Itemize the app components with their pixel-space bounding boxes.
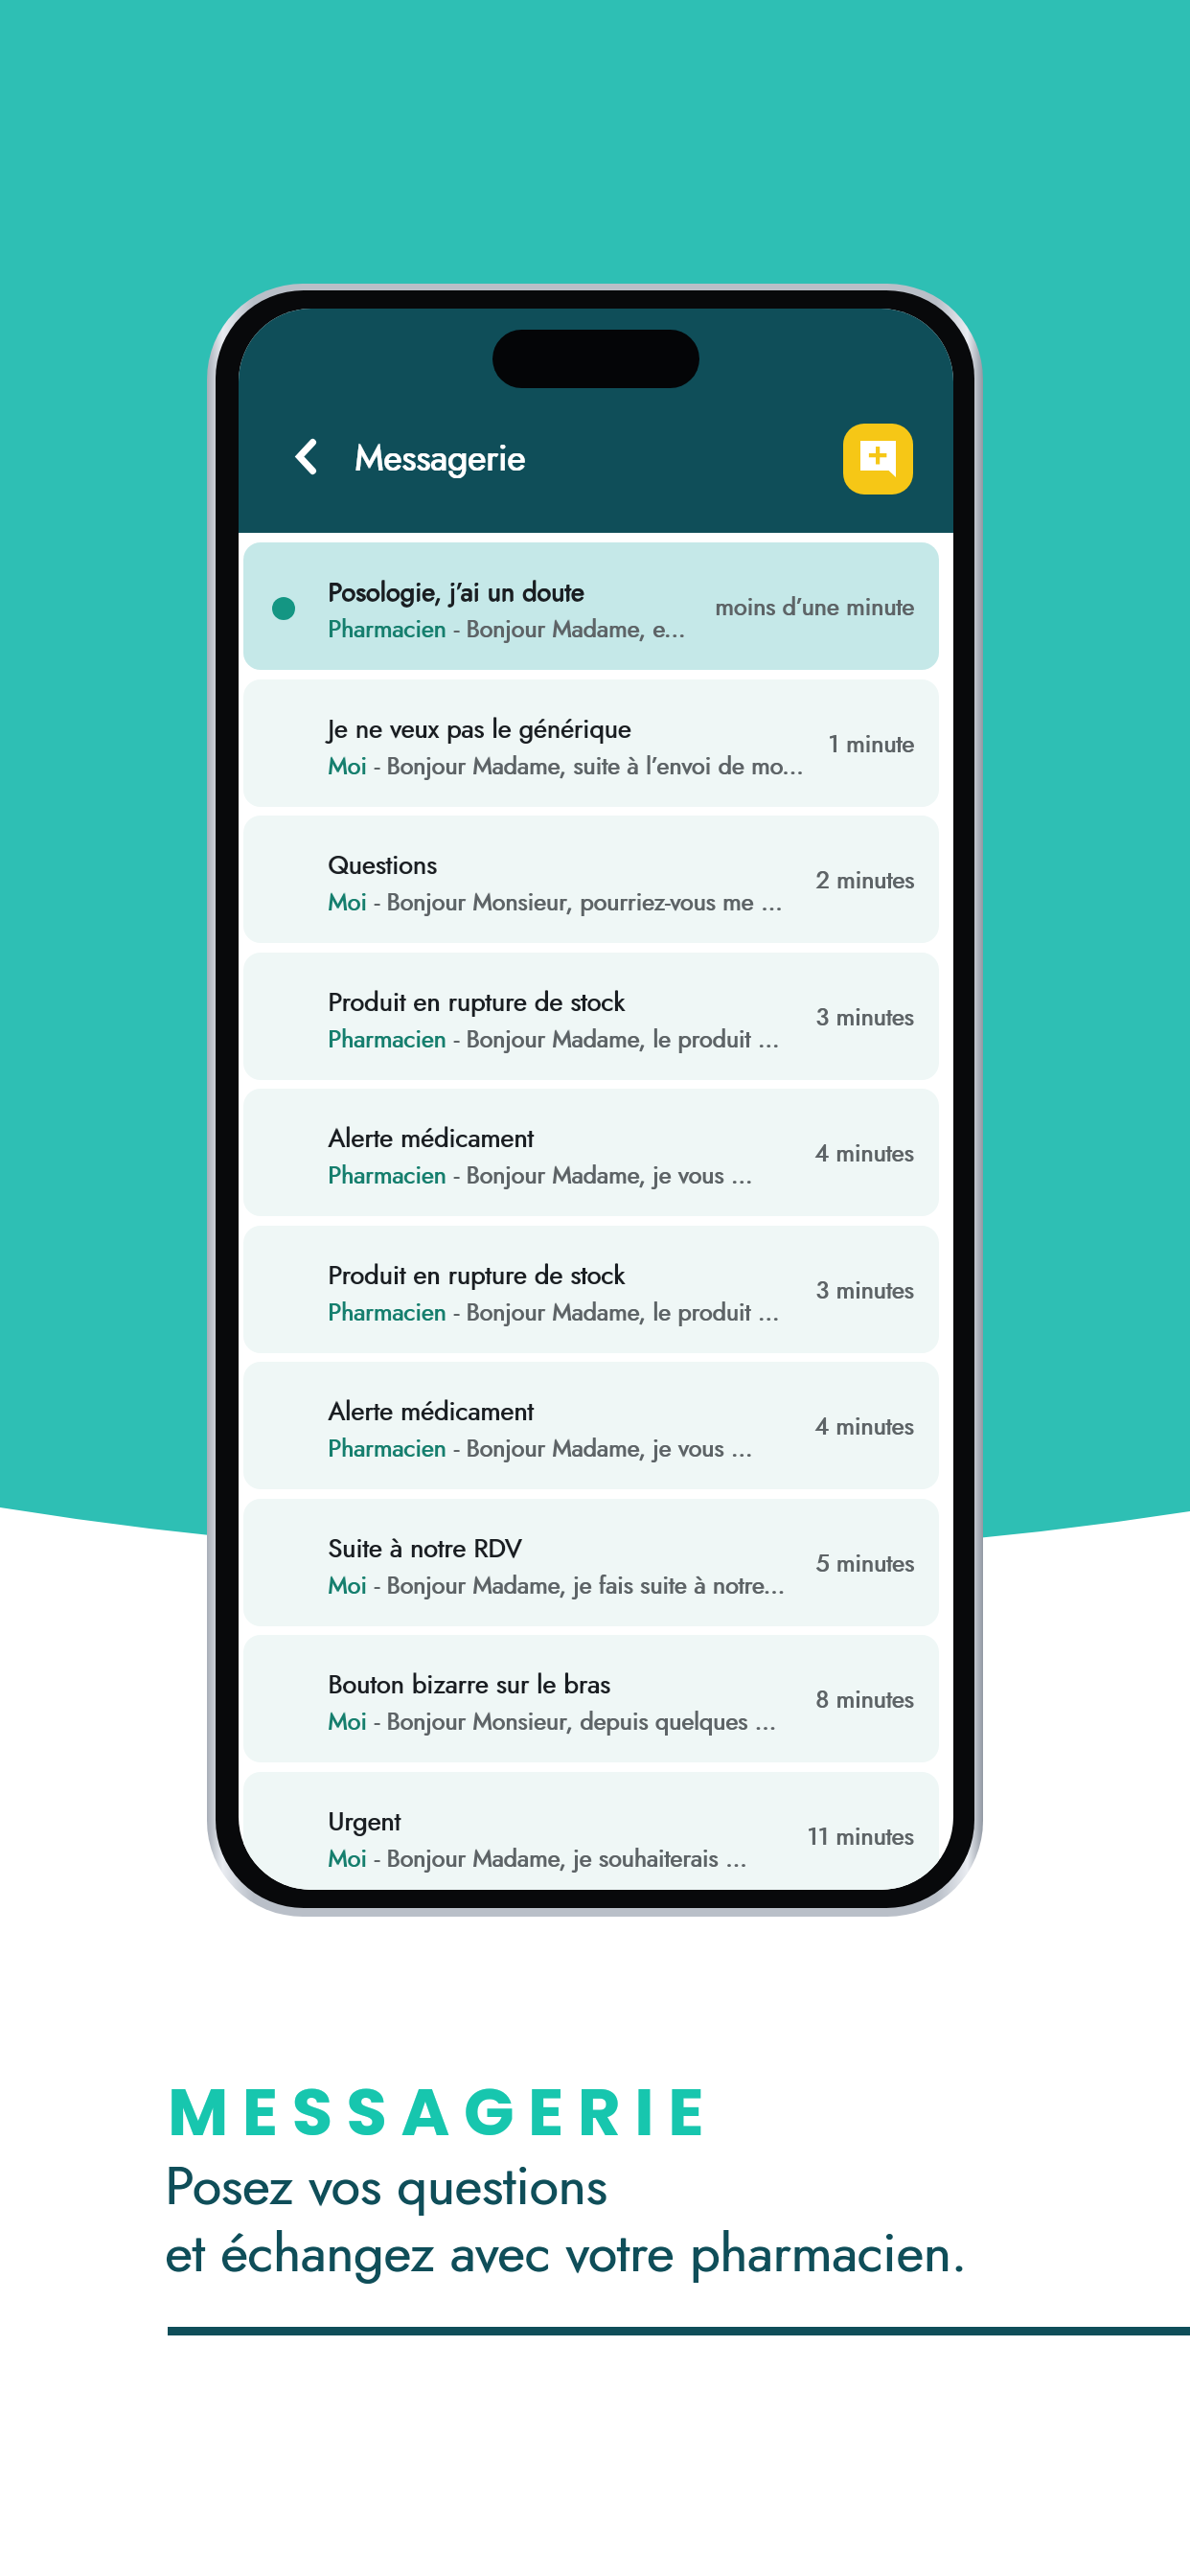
staticText: - Bonjour Madame, je vous ... <box>446 1431 753 1465</box>
staticText: - Bonjour Madame, je vous ... <box>446 1158 753 1192</box>
staticText: Moi <box>329 1841 368 1875</box>
staticText: - Bonjour Madame, je fais suite à notre.… <box>368 1568 786 1602</box>
staticText: 4 minutes <box>815 1136 915 1170</box>
staticText: Posologie, j’ai un doute <box>329 573 585 610</box>
staticText: Produit en rupture de stock <box>328 983 625 1021</box>
staticText: Pharmacien <box>328 1431 446 1465</box>
button[interactable]: Nouveau message <box>843 424 913 494</box>
staticText: Pharmacien <box>328 1158 446 1192</box>
staticText: Messagerie <box>355 432 526 483</box>
staticText: Posologie, j’ai un doute <box>329 573 585 610</box>
staticText: - Bonjour Monsieur, depuis quelques ... <box>368 1704 777 1738</box>
staticText: - Bonjour Madame, le produit ... <box>446 1295 780 1329</box>
staticText: - Bonjour Monsieur, depuis quelques ... <box>367 1704 776 1738</box>
button[interactable]: Retour <box>271 422 340 491</box>
staticText: 3 minutes <box>816 1000 915 1034</box>
staticText: 4 minutes <box>815 1409 915 1443</box>
staticText: Moi <box>328 748 367 783</box>
staticText: Urgent <box>328 1803 400 1840</box>
button[interactable]: Je ne veux pas le générique <box>243 679 939 807</box>
button[interactable]: Suite à notre RDV <box>243 1499 939 1626</box>
staticText: Je ne veux pas le générique <box>329 710 632 747</box>
button[interactable]: Alerte médicament <box>243 1089 939 1216</box>
staticText: moins d’une minute <box>716 589 915 624</box>
staticText: Moi <box>329 748 368 783</box>
staticText: Pharmacien <box>329 1431 447 1465</box>
staticText: 4 minutes <box>814 1136 914 1170</box>
staticText: 11 minutes <box>808 1819 915 1853</box>
staticText: Pharmacien <box>329 1295 447 1329</box>
staticText: 3 minutes <box>815 1000 914 1034</box>
staticText: - Bonjour Madame, e... <box>446 611 686 646</box>
staticText: 1 minute <box>828 726 914 761</box>
staticText: Pharmacien <box>329 611 447 646</box>
staticText: 11 minutes <box>807 1819 914 1853</box>
staticText: - Bonjour Madame, je fais suite à notre.… <box>367 1568 785 1602</box>
staticText: Moi <box>329 885 368 919</box>
staticText: Moi <box>328 1704 367 1738</box>
staticText: 8 minutes <box>815 1682 914 1716</box>
staticText: 4 minutes <box>814 1409 914 1443</box>
staticText: Posez vos questions et échangez avec vot… <box>166 2148 968 2290</box>
button[interactable]: Alerte médicament <box>243 1362 939 1489</box>
staticText: - Bonjour Madame, suite à l’envoi de mo.… <box>367 748 804 783</box>
staticText: 2 minutes <box>815 862 914 897</box>
staticText: Pharmacien <box>328 1022 446 1056</box>
button[interactable]: Produit en rupture de stock <box>243 953 939 1080</box>
staticText: Alerte médicament <box>328 1119 534 1157</box>
staticText: - Bonjour Madame, suite à l’envoi de mo.… <box>368 748 805 783</box>
staticText: - Bonjour Madame, le produit ... <box>446 1022 780 1056</box>
staticText: Pharmacien <box>328 611 446 646</box>
staticText: moins d’une minute <box>715 589 914 624</box>
staticText: Produit en rupture de stock <box>329 983 626 1021</box>
staticText: 3 minutes <box>815 1273 914 1307</box>
button[interactable]: Urgent <box>243 1772 939 1890</box>
button[interactable]: Questions <box>243 816 939 943</box>
staticText: Pharmacien <box>329 1022 447 1056</box>
staticText: Suite à notre RDV <box>328 1529 522 1567</box>
staticText: Moi <box>329 1568 368 1602</box>
staticText: Posez vos questions et échangez avec vot… <box>165 2148 967 2290</box>
staticText: - Bonjour Madame, je vous ... <box>447 1431 754 1465</box>
staticText: Bouton bizarre sur le bras <box>328 1666 610 1703</box>
staticText: 8 minutes <box>816 1682 915 1716</box>
staticText: Alerte médicament <box>328 1392 534 1430</box>
staticText: Moi <box>328 1568 367 1602</box>
staticText: - Bonjour Monsieur, pourriez-vous me ... <box>367 885 783 919</box>
staticText: 2 minutes <box>816 862 915 897</box>
staticText: Moi <box>329 1704 368 1738</box>
staticText: - Bonjour Madame, le produit ... <box>447 1295 781 1329</box>
staticText: Urgent <box>329 1803 401 1840</box>
staticText: - Bonjour Monsieur, pourriez-vous me ... <box>368 885 784 919</box>
staticText: Questions <box>329 846 438 884</box>
staticText: Pharmacien <box>329 1158 447 1192</box>
staticText: - Bonjour Madame, je souhaiterais ... <box>367 1841 747 1875</box>
staticText: MESSAGERIE <box>168 2066 718 2159</box>
staticText: Questions <box>328 846 437 884</box>
staticText: - Bonjour Madame, je souhaiterais ... <box>368 1841 748 1875</box>
staticText: Messagerie <box>355 432 527 483</box>
staticText: Alerte médicament <box>329 1392 535 1430</box>
staticText: Posologie, j’ai un doute <box>328 573 584 610</box>
staticText: Moi <box>328 885 367 919</box>
staticText: Bouton bizarre sur le bras <box>329 1666 611 1703</box>
staticText: Produit en rupture de stock <box>329 1256 626 1294</box>
staticText: - Bonjour Madame, le produit ... <box>447 1022 781 1056</box>
staticText: Moi <box>328 1841 367 1875</box>
button[interactable]: Posologie, j’ai un doute <box>243 542 939 670</box>
staticText: 5 minutes <box>815 1546 914 1580</box>
button[interactable]: Bouton bizarre sur le bras <box>243 1635 939 1762</box>
staticText: 3 minutes <box>816 1273 915 1307</box>
button[interactable]: Produit en rupture de stock <box>243 1226 939 1353</box>
staticText: 1 minute <box>829 726 915 761</box>
staticText: 5 minutes <box>816 1546 915 1580</box>
staticText: Suite à notre RDV <box>329 1529 523 1567</box>
staticText: - Bonjour Madame, e... <box>447 611 687 646</box>
staticText: Je ne veux pas le générique <box>328 710 631 747</box>
staticText: - Bonjour Madame, je vous ... <box>447 1158 754 1192</box>
staticText: Produit en rupture de stock <box>328 1256 625 1294</box>
staticText: Posologie, j’ai un doute <box>328 574 584 611</box>
staticText: Alerte médicament <box>329 1119 535 1157</box>
staticText: Pharmacien <box>328 1295 446 1329</box>
